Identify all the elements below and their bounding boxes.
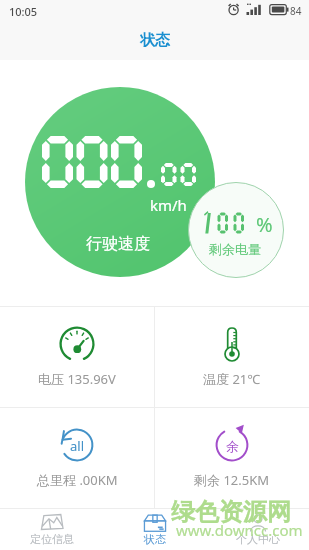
staticText: km/h <box>150 195 187 215</box>
button[interactable]: 定位信息 <box>0 509 103 550</box>
staticText: 个人中心 <box>236 532 280 546</box>
staticText: % <box>256 211 273 238</box>
button[interactable]: 温度 21℃ <box>155 307 309 407</box>
staticText: 余 <box>226 438 239 454</box>
button[interactable]: 状态 <box>103 509 206 550</box>
button[interactable]: all <box>0 408 154 508</box>
other: 状态 <box>143 514 167 532</box>
staticText: 总里程 .00KM <box>37 471 118 489</box>
button[interactable]: 个人中心 <box>206 509 309 550</box>
staticText: 绿色资源网 <box>171 497 291 527</box>
staticText: 行驶速度 <box>86 234 150 254</box>
button[interactable]: 电压 135.96V <box>0 307 154 407</box>
staticText: 84 <box>290 4 302 18</box>
staticText: 状态 <box>144 532 166 546</box>
staticText: 定位信息 <box>30 532 74 546</box>
staticText: 剩余 12.5KM <box>194 471 270 489</box>
staticText: 状态 <box>140 31 170 50</box>
button[interactable]: 余 <box>155 408 309 508</box>
staticText: all <box>70 437 85 455</box>
staticText: 温度 21℃ <box>203 370 261 388</box>
staticText: 10:05 <box>9 4 38 19</box>
other: 定位信息 <box>41 514 63 530</box>
staticText: 剩余电量 <box>209 241 261 257</box>
staticText: 电压 135.96V <box>38 370 116 388</box>
other: 个人中心 <box>249 514 267 532</box>
staticText: www.downcc.com <box>176 520 303 540</box>
